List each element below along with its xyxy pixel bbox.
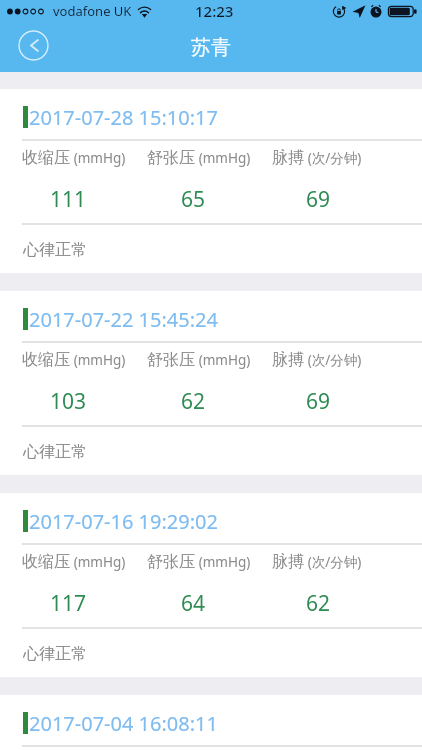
staticText: 收缩压 (mmHg)	[22, 552, 126, 572]
staticText: 脉搏 (次/分钟)	[272, 148, 362, 168]
staticText: 69	[274, 387, 362, 416]
staticText: 收缩压 (mmHg)	[22, 148, 126, 168]
staticText: 心律正常	[23, 644, 87, 664]
staticText: 舒张压 (mmHg)	[147, 552, 251, 572]
staticText: 65	[149, 185, 237, 214]
staticText: 62	[149, 387, 237, 416]
staticText: 舒张压 (mmHg)	[147, 350, 251, 370]
button[interactable]: Back	[18, 30, 49, 61]
staticText: 收缩压 (mmHg)	[22, 350, 126, 370]
staticText: 111	[24, 185, 112, 214]
staticText: 2017-07-16 19:29:02	[29, 508, 218, 535]
button[interactable]: 2017-07-22 15:45:24	[0, 291, 422, 475]
staticText: 69	[274, 185, 362, 214]
staticText: 脉搏 (次/分钟)	[272, 350, 362, 370]
button[interactable]: 2017-07-04 16:08:11	[0, 695, 422, 750]
button[interactable]: 2017-07-28 15:10:17	[0, 89, 422, 273]
staticText: vodafone UK	[53, 2, 132, 20]
staticText: 2017-07-22 15:45:24	[29, 306, 218, 333]
staticText: 心律正常	[23, 442, 87, 462]
staticText: 62	[274, 589, 362, 618]
staticText: 64	[149, 589, 237, 618]
staticText: 心律正常	[23, 240, 87, 260]
staticText: 舒张压 (mmHg)	[147, 148, 251, 168]
staticText: 2017-07-04 16:08:11	[29, 710, 218, 737]
staticText: 117	[24, 589, 112, 618]
staticText: 2017-07-28 15:10:17	[29, 104, 218, 131]
staticText: 脉搏 (次/分钟)	[272, 552, 362, 572]
staticText: 12:23	[195, 1, 234, 21]
button[interactable]: 2017-07-16 19:29:02	[0, 493, 422, 677]
staticText: 苏青	[191, 35, 231, 60]
staticText: 103	[24, 387, 112, 416]
